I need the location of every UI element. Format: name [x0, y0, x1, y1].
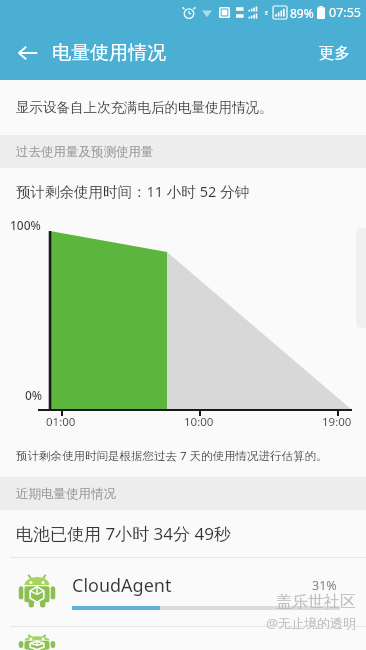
staticText: 19:00 [322, 414, 352, 430]
staticText: 盖乐世社区 [276, 592, 356, 612]
staticText: 近期电量使用情况 [16, 486, 116, 502]
staticText: 预计剩余使用时间：11 小时 52 分钟 [16, 181, 249, 201]
staticText: 31% [312, 577, 337, 594]
staticText: 显示设备自上次充满电后的电量使用情况。 [16, 99, 273, 116]
button[interactable]: 更多 [313, 35, 356, 71]
staticText: 89% [290, 5, 314, 21]
button[interactable]: 返回 [8, 33, 48, 73]
staticText: 电量使用情况 [52, 41, 166, 65]
staticText: CloudAgent [72, 573, 172, 598]
staticText: 预计剩余使用时间是根据您过去 7 天的使用情况进行估算的。 [16, 448, 328, 464]
staticText: 0% [25, 387, 43, 403]
staticText: 过去使用量及预测使用量 [16, 144, 154, 160]
staticText: 电池已使用 7小时 34分 49秒 [16, 522, 231, 545]
staticText: 07:55 [329, 4, 361, 21]
staticText: 100% [10, 217, 41, 233]
staticText: E [265, 9, 269, 17]
button[interactable]: CloudAgent [0, 558, 366, 626]
staticText: @无止境的透明 [266, 614, 356, 632]
staticText: 10:00 [184, 414, 214, 430]
staticText: 01:00 [46, 414, 76, 430]
staticText: 更多 [319, 43, 350, 63]
